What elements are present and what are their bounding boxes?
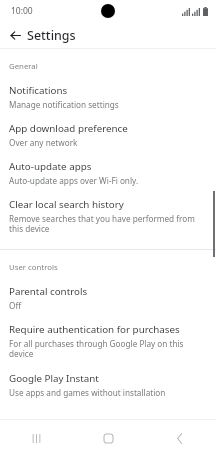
staticText: Auto-update apps over Wi-Fi only. — [9, 175, 139, 186]
button[interactable]: Require authentication for purchases — [0, 313, 216, 362]
staticText: Require authentication for purchases — [9, 323, 180, 336]
staticText: Clear local search history — [9, 198, 124, 211]
staticText: Settings — [27, 27, 76, 44]
staticText: Parental controls — [9, 285, 88, 298]
staticText: Remove searches that you have performed … — [9, 213, 202, 235]
button[interactable]: Google Play Instant — [0, 362, 216, 400]
staticText: User controls — [9, 262, 58, 273]
staticText: Manage notification settings — [9, 99, 119, 110]
staticText: Over any network — [9, 137, 78, 148]
staticText: General — [9, 61, 38, 72]
button[interactable]: Back — [5, 25, 25, 45]
staticText: Off — [9, 300, 22, 311]
staticText: For all purchases through Google Play on… — [9, 338, 202, 360]
staticText: Use apps and games without installation — [9, 387, 166, 398]
button[interactable]: Back — [144, 420, 216, 456]
button[interactable]: Parental controls — [0, 275, 216, 313]
staticText: App download preference — [9, 122, 128, 135]
button[interactable]: Notifications — [0, 74, 216, 112]
button[interactable]: Clear local search history — [0, 188, 216, 237]
button[interactable]: Recent apps — [0, 420, 72, 456]
button[interactable]: Auto-update apps — [0, 150, 216, 188]
button[interactable]: App download preference — [0, 112, 216, 150]
staticText: Auto-update apps — [9, 160, 92, 173]
staticText: 10:00 — [11, 5, 33, 17]
button[interactable]: Home — [72, 420, 144, 456]
staticText: Notifications — [9, 84, 68, 97]
staticText: Google Play Instant — [9, 372, 99, 385]
